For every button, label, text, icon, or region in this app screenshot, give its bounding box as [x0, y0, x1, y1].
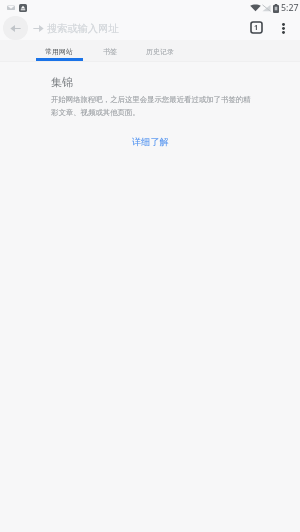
button[interactable]: 常用网站 [35, 42, 83, 61]
button[interactable]: Forward [31, 21, 45, 35]
staticText: 集锦 [51, 75, 73, 89]
button[interactable]: 搜索或输入网址 [47, 17, 237, 39]
staticText: 开始网络旅程吧，之后这里会显示您最近看过或加了书签的精彩文章、视频或其他页面。 [51, 95, 253, 117]
button[interactable]: 书签 [86, 42, 134, 61]
staticText: 常用网站 [45, 47, 73, 56]
button[interactable]: More options [273, 18, 293, 38]
staticText: 详细了解 [132, 136, 169, 148]
staticText: 1 [254, 23, 259, 33]
staticText: 历史记录 [146, 47, 174, 56]
button[interactable]: Tabs [246, 17, 266, 37]
staticText: 书签 [103, 47, 117, 56]
staticText: 搜索或输入网址 [47, 22, 119, 35]
staticText: 5:27 [281, 2, 299, 14]
button[interactable]: Back [3, 16, 28, 40]
button[interactable]: 历史记录 [136, 42, 184, 61]
button[interactable]: 详细了解 [124, 133, 177, 151]
